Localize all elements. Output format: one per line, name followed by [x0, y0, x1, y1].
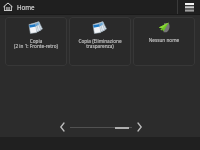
button[interactable]: Copia (Eliminazione trasparenza) [69, 17, 131, 66]
staticText: Home [17, 3, 35, 11]
button[interactable]: Next [136, 122, 144, 132]
staticText: Copia (2 in 1: Fronte-retro) [5, 38, 67, 50]
button[interactable]: Copia (2 in 1: Fronte-retro) [5, 17, 67, 66]
button[interactable]: Previous [58, 122, 66, 132]
button[interactable]: Nessun nome [133, 17, 195, 66]
staticText: Nessun nome [133, 37, 195, 43]
staticText: Copia (Eliminazione trasparenza) [69, 38, 131, 50]
button[interactable]: Menu [178, 0, 200, 14]
button[interactable]: Home [0, 0, 177, 14]
